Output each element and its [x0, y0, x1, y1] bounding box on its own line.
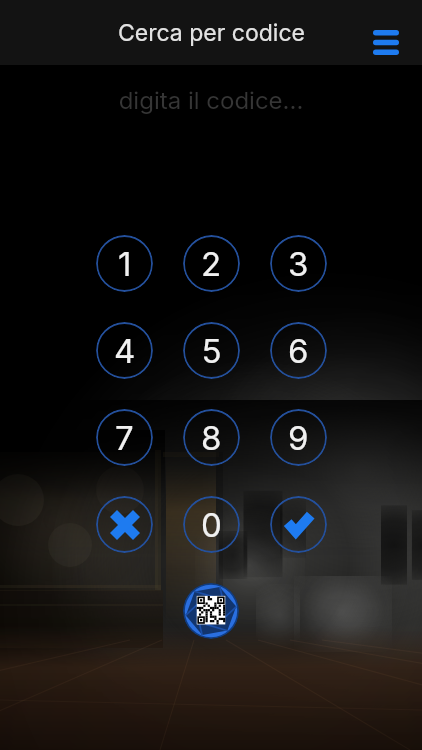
staticText: 9 — [288, 418, 309, 458]
staticText: 1 — [118, 244, 132, 284]
staticText: 0 — [201, 505, 222, 545]
staticText: digita il codice... — [0, 86, 422, 115]
button[interactable]: 1 — [96, 235, 153, 292]
button[interactable]: 3 — [270, 235, 327, 292]
staticText: 8 — [201, 418, 222, 458]
staticText: 7 — [115, 418, 134, 458]
button[interactable]: 4 — [96, 322, 153, 379]
button[interactable]: 5 — [183, 322, 240, 379]
staticText: 3 — [288, 244, 309, 284]
button[interactable]: 2 — [183, 235, 240, 292]
button[interactable]: Confirm — [270, 496, 327, 553]
button[interactable]: 0 — [183, 496, 240, 553]
button[interactable]: Menu — [363, 20, 409, 66]
staticText: 5 — [202, 331, 222, 371]
button[interactable]: 8 — [183, 409, 240, 466]
staticText: 6 — [288, 331, 309, 371]
staticText: Cerca per codice — [118, 19, 305, 47]
button[interactable]: 7 — [96, 409, 153, 466]
button[interactable]: Clear — [96, 496, 153, 553]
button[interactable]: 6 — [270, 322, 327, 379]
staticText: 4 — [114, 331, 136, 371]
button[interactable]: 9 — [270, 409, 327, 466]
button[interactable]: Scan QR code — [183, 583, 239, 639]
staticText: 2 — [201, 244, 222, 284]
